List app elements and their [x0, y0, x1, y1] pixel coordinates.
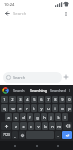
staticText: q: [3, 106, 6, 111]
staticText: .: [57, 133, 59, 138]
staticText: z: [15, 124, 17, 129]
button[interactable]: Backspace: [63, 122, 72, 130]
staticText: ?123: [3, 133, 10, 137]
staticText: s: [15, 115, 17, 120]
staticText: w: [11, 106, 15, 111]
staticText: l: [64, 115, 66, 120]
staticText: a: [7, 115, 10, 120]
button[interactable]: Emoji: [19, 131, 25, 139]
button[interactable]: Search: [3, 72, 62, 83]
button[interactable]: 2: [9, 96, 16, 103]
button[interactable]: o: [59, 104, 65, 112]
button[interactable]: .: [55, 131, 61, 139]
button[interactable]: Add: [62, 73, 70, 81]
button[interactable]: g: [34, 113, 40, 121]
staticText: Searching: [30, 88, 48, 93]
staticText: r: [26, 106, 28, 111]
staticText: v: [37, 124, 40, 129]
button[interactable]: c: [28, 122, 34, 130]
staticText: 10:24: [4, 2, 15, 7]
button[interactable]: 5: [31, 96, 37, 103]
button[interactable]: 7: [45, 96, 51, 103]
button[interactable]: e: [17, 104, 23, 112]
button[interactable]: a: [5, 113, 12, 121]
button[interactable]: p: [66, 104, 72, 112]
button[interactable]: t: [31, 104, 37, 112]
button[interactable]: b: [42, 122, 48, 130]
staticText: 5: [33, 97, 36, 102]
staticText: 4: [26, 97, 29, 102]
staticText: k: [57, 115, 60, 120]
button[interactable]: z: [12, 122, 19, 130]
button[interactable]: More options: [61, 9, 70, 18]
button[interactable]: m: [56, 122, 62, 130]
button[interactable]: w: [9, 104, 16, 112]
staticText: Search: [13, 75, 26, 80]
staticText: o: [61, 106, 64, 111]
button[interactable]: u: [45, 104, 51, 112]
button[interactable]: 3: [17, 96, 23, 103]
staticText: 7: [47, 97, 50, 102]
staticText: 3: [19, 97, 22, 102]
staticText: 0: [68, 97, 71, 102]
button[interactable]: 8: [52, 96, 58, 103]
button[interactable]: Search: [9, 85, 29, 95]
staticText: j: [50, 115, 52, 120]
button[interactable]: 1: [1, 96, 8, 103]
staticText: Searched: [50, 88, 66, 93]
button[interactable]: Back: [3, 9, 12, 18]
staticText: f: [29, 115, 31, 120]
button[interactable]: f: [27, 113, 33, 121]
staticText: ,: [14, 133, 16, 138]
staticText: i: [54, 106, 56, 111]
button[interactable]: i: [52, 104, 58, 112]
staticText: g: [36, 115, 39, 120]
button[interactable]: Shift: [1, 122, 11, 130]
staticText: 9: [61, 97, 64, 102]
button[interactable]: j: [48, 113, 54, 121]
staticText: x: [22, 124, 25, 129]
staticText: d: [22, 115, 25, 120]
button[interactable]: k: [55, 113, 61, 121]
staticText: y: [40, 106, 43, 111]
staticText: u: [47, 106, 50, 111]
staticText: b: [44, 124, 47, 129]
staticText: 6: [40, 97, 43, 102]
staticText: 1: [3, 97, 6, 102]
button[interactable]: Back: [9, 141, 21, 150]
staticText: c: [30, 124, 32, 129]
button[interactable]: x: [20, 122, 27, 130]
button[interactable]: 4: [24, 96, 30, 103]
staticText: t: [33, 106, 35, 111]
staticText: e: [19, 106, 22, 111]
button[interactable]: h: [41, 113, 47, 121]
button[interactable]: ?123: [1, 131, 11, 139]
button[interactable]: r: [24, 104, 30, 112]
staticText: Search: [13, 88, 25, 93]
button[interactable]: d: [20, 113, 26, 121]
button[interactable]: Google: [1, 86, 9, 94]
button[interactable]: s: [13, 113, 19, 121]
button[interactable]: Enter: [62, 131, 72, 139]
staticText: p: [68, 106, 71, 111]
button[interactable]: ,: [12, 131, 18, 139]
button[interactable]: v: [35, 122, 41, 130]
button[interactable]: l: [62, 113, 68, 121]
staticText: h: [43, 115, 46, 120]
button[interactable]: y: [38, 104, 44, 112]
staticText: Search: [13, 11, 27, 17]
button[interactable]: Recents: [52, 141, 64, 150]
button[interactable]: 9: [59, 96, 65, 103]
button[interactable]: More suggestions: [67, 85, 72, 95]
staticText: 8: [54, 97, 57, 102]
staticText: n: [51, 124, 54, 129]
button[interactable]: 0: [66, 96, 72, 103]
button[interactable]: Searching: [29, 85, 48, 95]
button[interactable]: n: [49, 122, 55, 130]
button[interactable]: q: [1, 104, 8, 112]
button[interactable]: Searched: [48, 85, 67, 95]
button[interactable]: 6: [38, 96, 44, 103]
button[interactable]: Home: [31, 141, 43, 150]
staticText: m: [57, 124, 61, 129]
